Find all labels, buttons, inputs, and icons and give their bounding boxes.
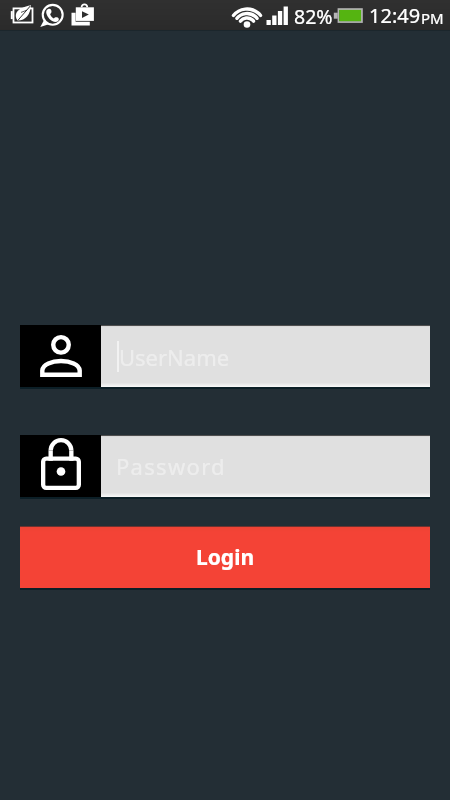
staticText: 12:49 xyxy=(369,2,421,29)
staticText: Login xyxy=(196,543,255,572)
staticText: PM xyxy=(421,8,444,28)
button[interactable]: Password field xyxy=(20,435,430,497)
staticText: UserName xyxy=(119,342,230,372)
staticText: Password xyxy=(116,451,226,481)
other: Password field xyxy=(20,435,101,497)
staticText: 82% xyxy=(294,3,333,30)
button[interactable]: User name field xyxy=(20,325,430,387)
other: User name field xyxy=(20,325,101,387)
button[interactable]: Login xyxy=(20,526,430,588)
